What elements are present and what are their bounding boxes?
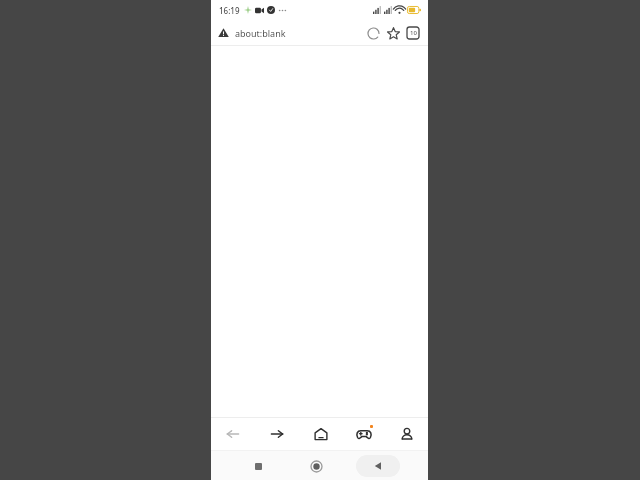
button[interactable]: Home: [299, 418, 342, 450]
button[interactable]: Back: [356, 455, 400, 477]
button[interactable]: Bookmark: [383, 23, 403, 43]
button[interactable]: Recents: [240, 455, 276, 477]
staticText: 10: [410, 29, 417, 37]
staticText: 16:19: [219, 5, 240, 16]
button[interactable]: about:blank: [218, 20, 363, 45]
button[interactable]: Back: [211, 418, 255, 450]
button[interactable]: Profile: [385, 418, 428, 450]
button[interactable]: Tabs, 10 open: [403, 23, 423, 43]
button[interactable]: Games: [342, 418, 385, 450]
button[interactable]: Stop loading: [363, 23, 383, 43]
staticText: about:blank: [235, 27, 286, 39]
button[interactable]: Home: [298, 455, 334, 477]
button[interactable]: Forward: [255, 418, 299, 450]
